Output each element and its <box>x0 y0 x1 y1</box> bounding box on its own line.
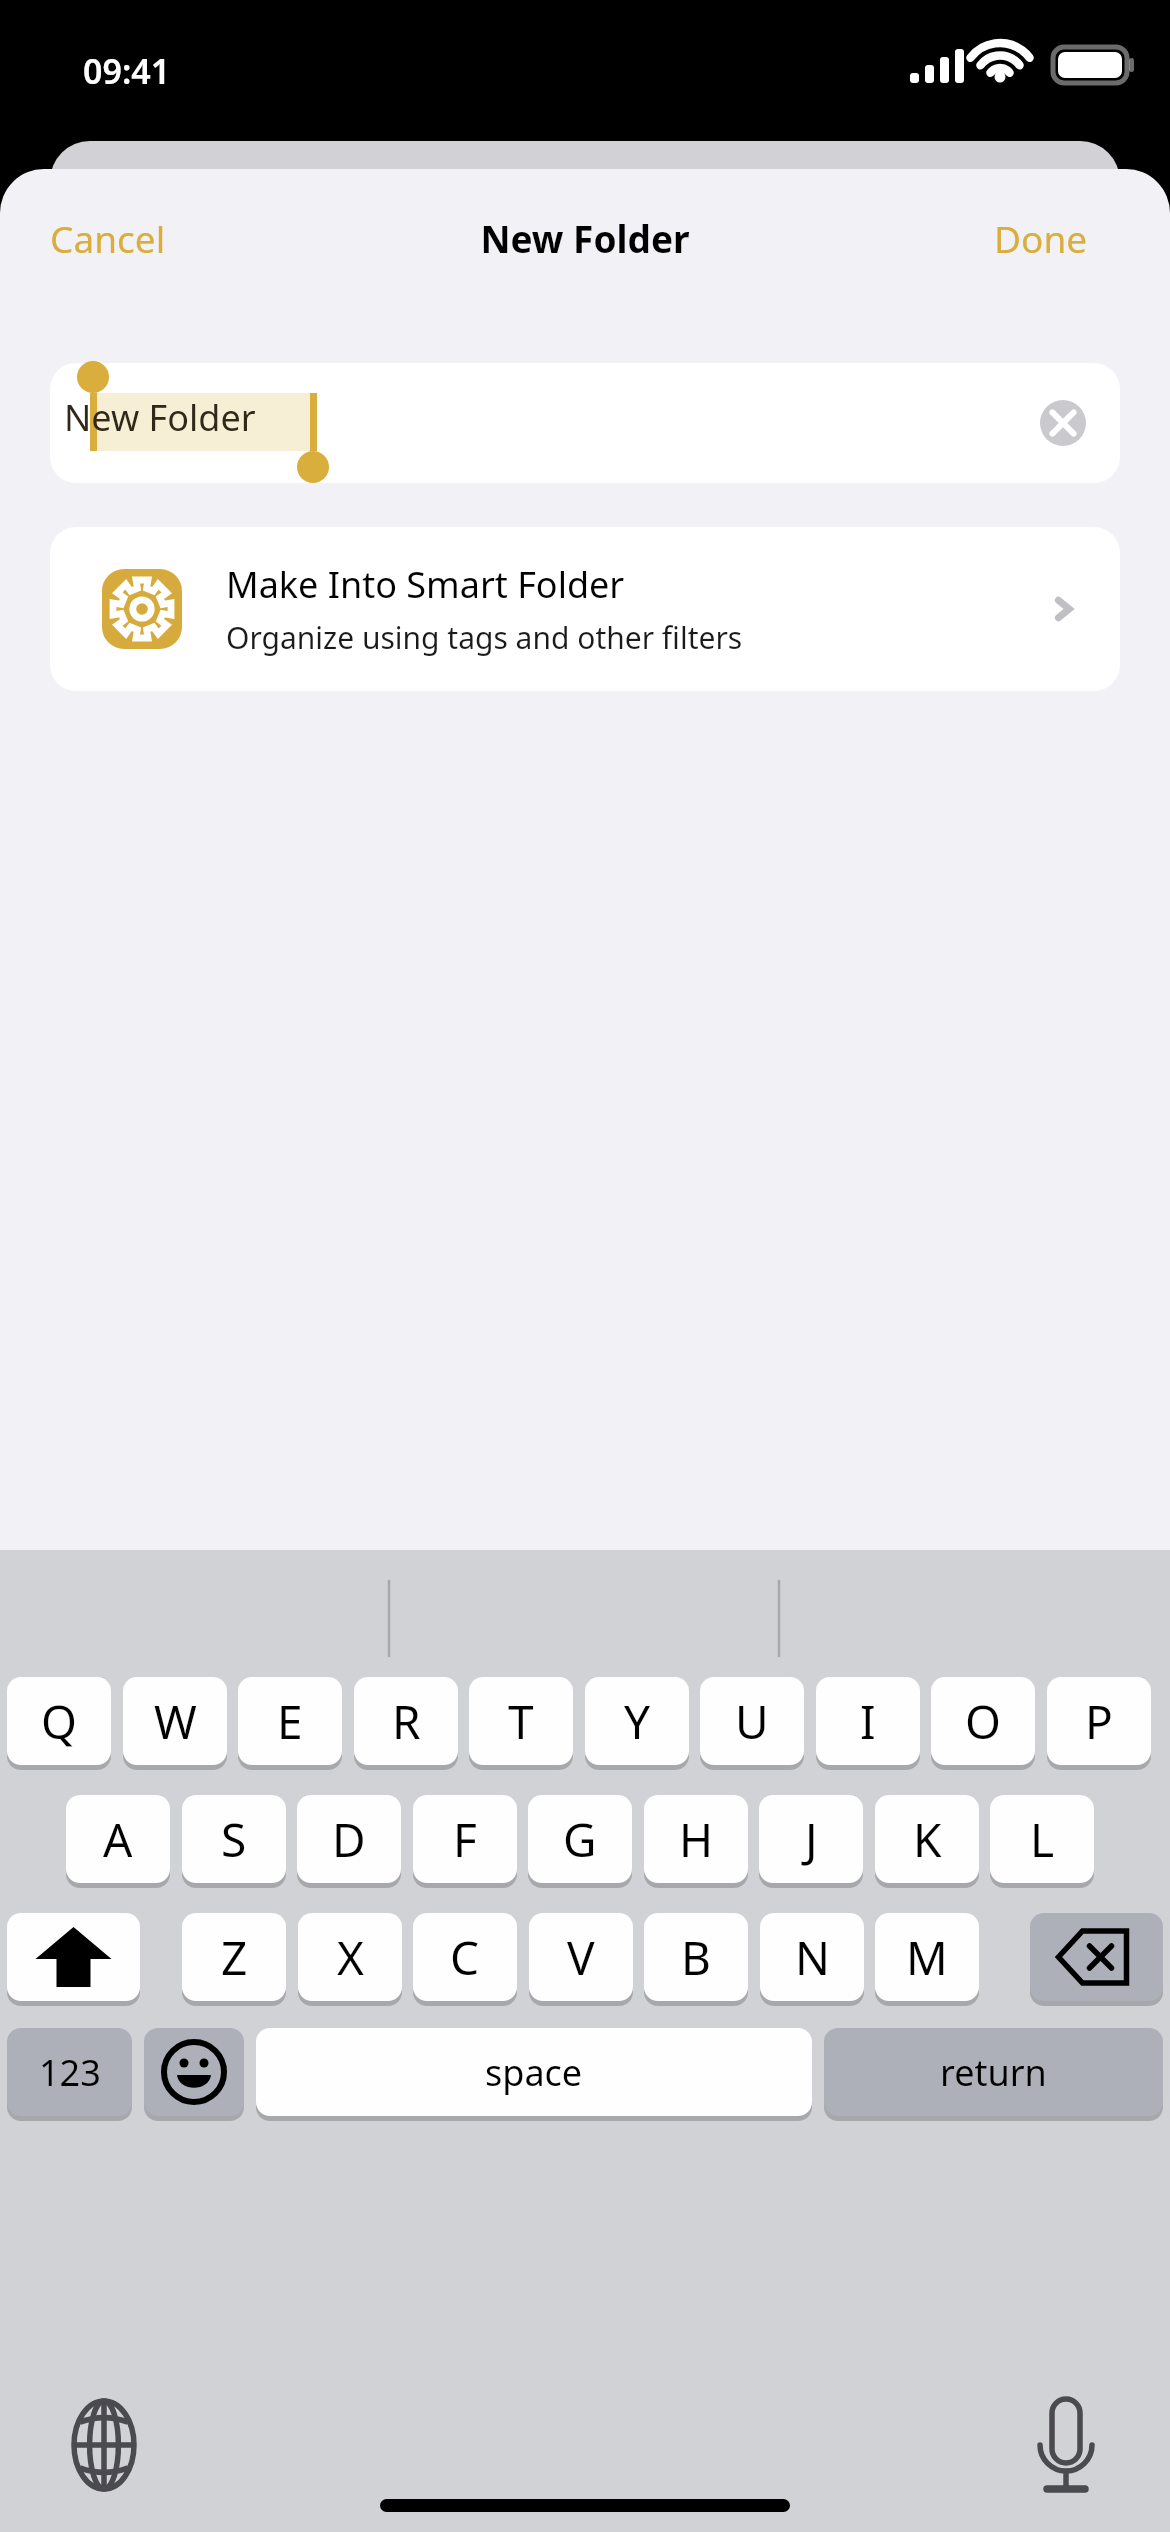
staticText: A <box>103 1808 133 1871</box>
button[interactable]: N <box>760 1913 864 2001</box>
staticText: U <box>735 1690 769 1753</box>
button[interactable]: space <box>256 2028 812 2116</box>
staticText: P <box>1085 1690 1113 1753</box>
button[interactable]: Done <box>980 195 1102 281</box>
button[interactable]: Y <box>585 1677 689 1765</box>
staticText: V <box>567 1926 595 1989</box>
button[interactable]: Switch keyboard language <box>48 2389 160 2501</box>
staticText: G <box>563 1808 597 1871</box>
button[interactable]: E <box>238 1677 342 1765</box>
staticText: Z <box>221 1926 248 1989</box>
staticText: 123 <box>39 2048 101 2097</box>
staticText: Done <box>994 213 1088 263</box>
staticText: R <box>392 1690 421 1753</box>
staticText: Cancel <box>50 213 166 263</box>
staticText: K <box>913 1808 942 1871</box>
staticText: O <box>965 1690 1001 1753</box>
button[interactable]: L <box>990 1795 1094 1883</box>
button[interactable]: Cancel <box>36 195 180 281</box>
staticText: H <box>679 1808 714 1871</box>
staticText: B <box>681 1926 711 1989</box>
staticText: L <box>1030 1808 1055 1871</box>
button[interactable]: Emoji <box>144 2028 244 2116</box>
button[interactable]: T <box>469 1677 573 1765</box>
staticText: F <box>453 1808 477 1871</box>
staticText: N <box>795 1926 830 1989</box>
button[interactable]: K <box>875 1795 979 1883</box>
button[interactable]: C <box>413 1913 517 2001</box>
button[interactable]: Q <box>7 1677 111 1765</box>
staticText: I <box>860 1690 876 1753</box>
button[interactable]: F <box>413 1795 517 1883</box>
staticText: S <box>221 1808 247 1871</box>
staticText: Q <box>41 1690 77 1753</box>
staticText: C <box>450 1926 480 1989</box>
staticText: return <box>940 2048 1047 2097</box>
button[interactable]: I <box>816 1677 920 1765</box>
button[interactable]: W <box>123 1677 227 1765</box>
button[interactable]: V <box>529 1913 633 2001</box>
button[interactable]: P <box>1047 1677 1151 1765</box>
button[interactable]: Clear text <box>1040 400 1086 446</box>
button[interactable] <box>50 363 1120 483</box>
button[interactable]: B <box>644 1913 748 2001</box>
button[interactable]: M <box>875 1913 979 2001</box>
staticText: Make Into Smart Folder <box>226 560 625 609</box>
button[interactable]: Dictate <box>1010 2389 1122 2501</box>
button[interactable]: O <box>931 1677 1035 1765</box>
staticText: New Folder <box>64 393 256 442</box>
button[interactable]: R <box>354 1677 458 1765</box>
button[interactable]: D <box>297 1795 401 1883</box>
button[interactable]: G <box>528 1795 632 1883</box>
staticText: Organize using tags and other filters <box>226 617 743 658</box>
button[interactable]: Z <box>182 1913 286 2001</box>
button[interactable]: U <box>700 1677 804 1765</box>
staticText: J <box>805 1808 818 1871</box>
staticText: X <box>337 1926 364 1989</box>
button[interactable]: Shift <box>7 1913 140 2001</box>
button[interactable]: S <box>182 1795 286 1883</box>
button[interactable]: X <box>298 1913 402 2001</box>
staticText: D <box>332 1808 366 1871</box>
staticText: New Folder <box>0 213 1170 263</box>
staticText: space <box>485 2048 583 2097</box>
button[interactable]: J <box>759 1795 863 1883</box>
button[interactable]: 123 <box>7 2028 132 2116</box>
button[interactable]: Backspace <box>1030 1913 1163 2001</box>
staticText: 09:41 <box>83 48 171 94</box>
button[interactable]: A <box>66 1795 170 1883</box>
staticText: Y <box>624 1690 651 1753</box>
button[interactable]: H <box>644 1795 748 1883</box>
staticText: W <box>154 1690 197 1753</box>
staticText: T <box>508 1690 534 1753</box>
button[interactable]: return <box>824 2028 1163 2116</box>
staticText: E <box>277 1690 303 1753</box>
button[interactable]: Make Into Smart Folder <box>50 527 1120 691</box>
staticText: M <box>906 1926 948 1989</box>
